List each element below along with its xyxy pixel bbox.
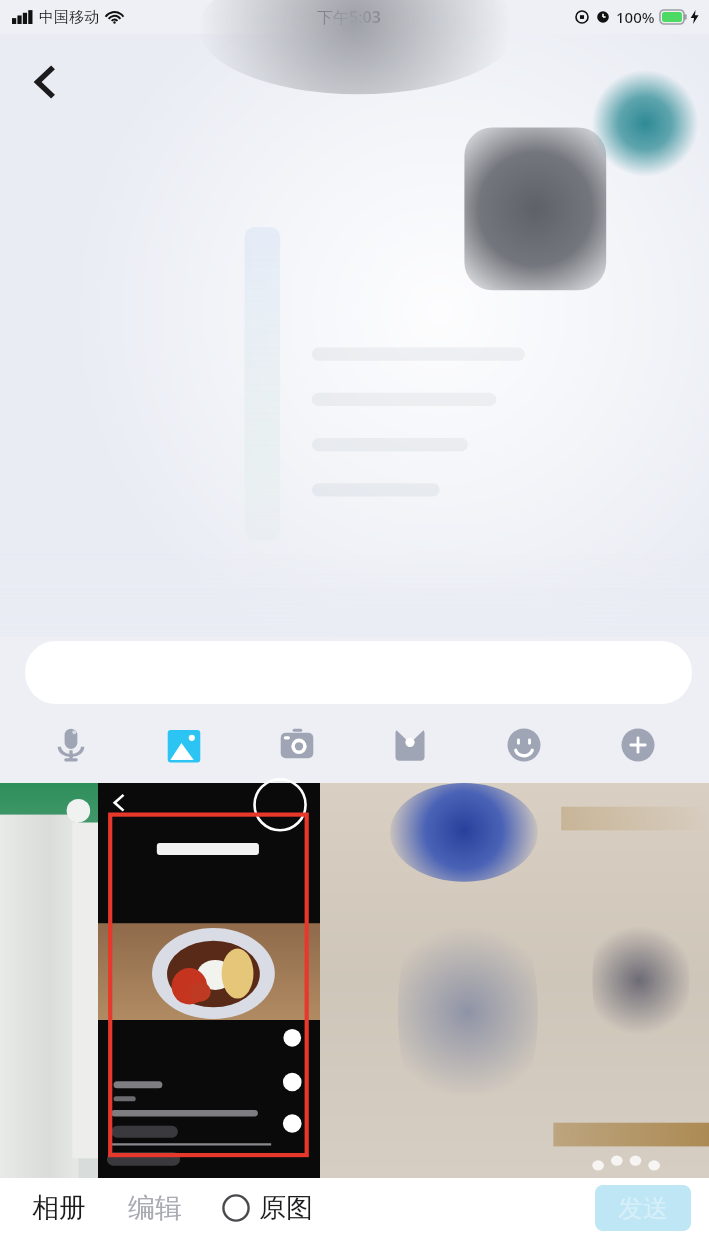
staticText: 下午5:03 [317,6,381,28]
staticText: 编辑 [128,1191,182,1225]
button[interactable]: 编辑 [128,1191,182,1225]
button[interactable]: Emoji [467,707,581,783]
button[interactable]: Photo 2, selected [98,783,320,1178]
button[interactable]: Photos [127,707,240,783]
button[interactable]: 原图 [222,1191,313,1225]
staticText: 发送 [618,1193,668,1224]
button[interactable]: Camera [240,707,353,783]
staticText: 中国移动 [39,8,99,27]
button[interactable]: Photo 3 [320,783,709,1178]
button[interactable]: More [581,707,695,783]
button[interactable]: 发送 [595,1185,691,1231]
staticText: 原图 [259,1191,313,1225]
button[interactable]: Red packet [353,707,467,783]
staticText: 相册 [32,1191,86,1225]
staticText: 100% [616,7,655,27]
button[interactable]: Back [22,58,70,106]
button[interactable]: Photo 1 [0,783,98,1178]
button[interactable]: Voice message [14,707,127,783]
button[interactable]: 相册 [32,1191,86,1225]
